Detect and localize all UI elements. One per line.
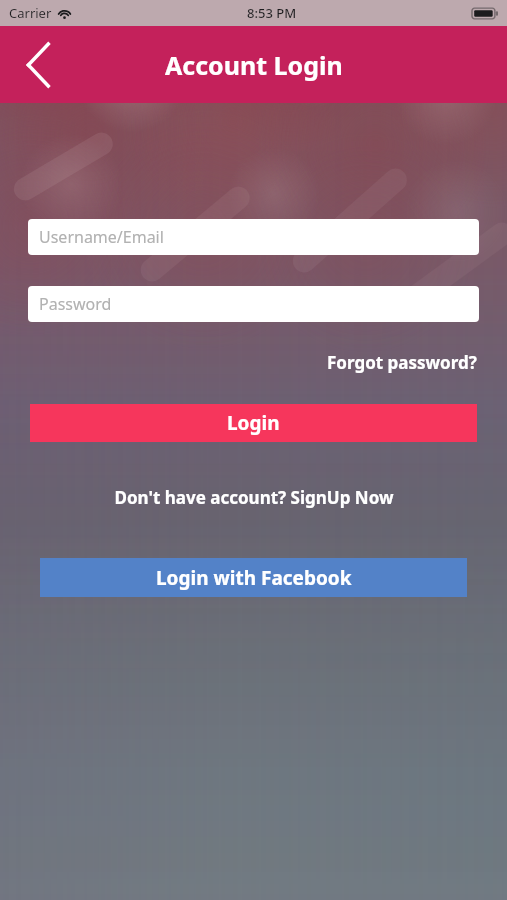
staticText: Don't have account? SignUp Now [114,486,394,509]
button[interactable]: Login with Facebook [40,558,467,597]
staticText: Login with Facebook [156,565,352,591]
staticText: 8:53 PM [247,4,297,22]
staticText: Forgot password? [327,351,477,374]
button[interactable]: Password [28,286,479,322]
staticText: Login [227,410,280,436]
staticText: Carrier [9,4,52,22]
staticText: Account Login [165,48,343,82]
button[interactable]: Username/Email [28,219,479,255]
button[interactable]: Forgot password? [325,349,479,376]
staticText: Username/Email [39,226,164,248]
staticText: Password [39,293,112,315]
button[interactable]: Don't have account? SignUp Now [110,483,398,512]
button[interactable]: Login [30,404,477,442]
button[interactable]: Back [12,39,64,91]
